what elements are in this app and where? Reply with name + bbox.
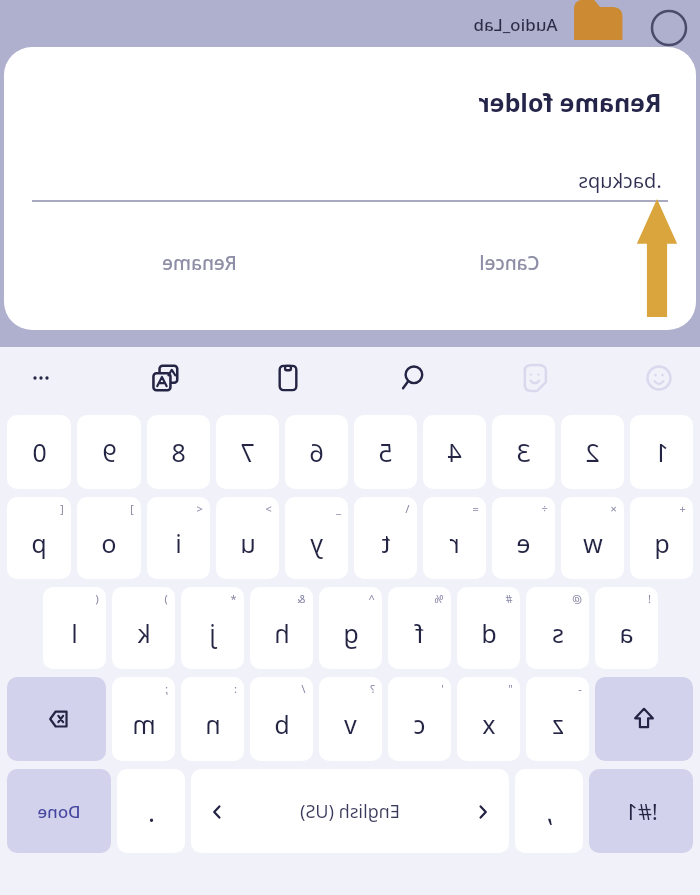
staticText: "	[508, 681, 513, 696]
button[interactable]: =	[423, 497, 486, 579]
button[interactable]: !	[595, 587, 658, 669]
other: Backspace	[40, 702, 74, 736]
staticText: [	[60, 501, 64, 516]
button[interactable]: Clipboard	[267, 357, 309, 399]
staticText: 2	[585, 435, 600, 469]
staticText: (	[95, 591, 99, 606]
staticText: x	[482, 707, 496, 741]
button[interactable]: 6	[285, 415, 348, 489]
button[interactable]: Backspace	[7, 677, 106, 761]
staticText: z	[552, 707, 564, 741]
button[interactable]: 7	[216, 415, 279, 489]
button[interactable]: Shift	[595, 677, 693, 761]
staticText: _	[336, 501, 341, 516]
button[interactable]: [	[7, 497, 71, 579]
button[interactable]: ,	[515, 769, 583, 853]
staticText: !#1	[625, 796, 658, 826]
staticText: \	[405, 501, 410, 516]
staticText: h	[274, 616, 290, 650]
button[interactable]: Emoji	[638, 357, 680, 399]
button[interactable]: 2	[561, 415, 624, 489]
staticText: ÷	[541, 501, 548, 516]
button[interactable]: <	[147, 497, 210, 579]
button[interactable]: !#1	[589, 769, 693, 853]
button[interactable]: 8	[147, 415, 210, 489]
button[interactable]: )	[112, 587, 175, 669]
staticText: ^	[368, 591, 375, 606]
staticText: Rename folder	[478, 85, 662, 119]
staticText: )	[164, 591, 168, 606]
button[interactable]: *	[181, 587, 244, 669]
staticText: g	[343, 616, 359, 650]
button[interactable]: &	[250, 587, 313, 669]
button[interactable]: Done	[7, 769, 111, 853]
staticText: Audio_Lab	[473, 13, 558, 36]
staticText: t	[381, 526, 391, 560]
button[interactable]: 3	[492, 415, 555, 489]
button[interactable]: "	[457, 677, 520, 761]
button[interactable]: 0	[7, 415, 71, 489]
button[interactable]: 4	[423, 415, 486, 489]
staticText: 0	[32, 435, 47, 469]
button[interactable]: ]	[77, 497, 141, 579]
button[interactable]: Stickers	[514, 357, 556, 399]
staticText: l	[71, 616, 78, 650]
staticText: d	[481, 616, 497, 650]
button[interactable]: .	[117, 769, 185, 853]
staticText: -	[578, 681, 582, 696]
button[interactable]: Search	[391, 357, 433, 399]
staticText: /	[301, 681, 306, 696]
button[interactable]: ÷	[492, 497, 555, 579]
staticText: <	[196, 501, 203, 516]
staticText: !	[648, 591, 651, 606]
button[interactable]: %	[388, 587, 451, 669]
staticText: 5	[378, 435, 393, 469]
button[interactable]: More options	[20, 357, 62, 399]
button[interactable]: ×	[561, 497, 624, 579]
staticText: q	[654, 526, 670, 560]
staticText: 9	[102, 435, 117, 469]
staticText: 7	[240, 435, 255, 469]
staticText: +	[679, 501, 686, 516]
button[interactable]: \	[354, 497, 417, 579]
staticText: =	[472, 501, 479, 516]
staticText: Rename	[162, 250, 237, 276]
button[interactable]: Space, English (US)	[191, 769, 509, 853]
button[interactable]: Cancel	[461, 240, 558, 286]
button[interactable]: ?	[319, 677, 382, 761]
staticText: w	[583, 526, 603, 560]
staticText: #	[505, 591, 513, 606]
button[interactable]: (	[43, 587, 106, 669]
staticText: 3	[516, 435, 531, 469]
staticText: f	[415, 616, 424, 650]
button[interactable]: ;	[112, 677, 175, 761]
staticText: k	[137, 616, 151, 650]
staticText: o	[101, 526, 117, 560]
staticText: n	[205, 707, 221, 741]
button[interactable]: ^	[319, 587, 382, 669]
button[interactable]: _	[285, 497, 348, 579]
staticText: a	[619, 616, 634, 650]
button[interactable]: #	[457, 587, 520, 669]
button[interactable]: '	[388, 677, 451, 761]
button[interactable]: Rename	[144, 240, 255, 286]
button[interactable]: Translate	[144, 357, 186, 399]
staticText: ]	[130, 501, 134, 516]
staticText: 4	[447, 435, 462, 469]
staticText: m	[132, 707, 156, 741]
staticText: ?	[370, 681, 375, 696]
staticText: &	[297, 591, 306, 606]
staticText: :	[234, 681, 237, 696]
button[interactable]: /	[250, 677, 313, 761]
button[interactable]: -	[526, 677, 589, 761]
button[interactable]: >	[216, 497, 279, 579]
button[interactable]: 1	[630, 415, 693, 489]
button[interactable]: 9	[77, 415, 141, 489]
button[interactable]: 5	[354, 415, 417, 489]
staticText: b	[274, 707, 290, 741]
button[interactable]: @	[526, 587, 589, 669]
button[interactable]: +	[630, 497, 693, 579]
button[interactable]: :	[181, 677, 244, 761]
staticText: >	[265, 501, 272, 516]
staticText: %	[434, 591, 444, 606]
